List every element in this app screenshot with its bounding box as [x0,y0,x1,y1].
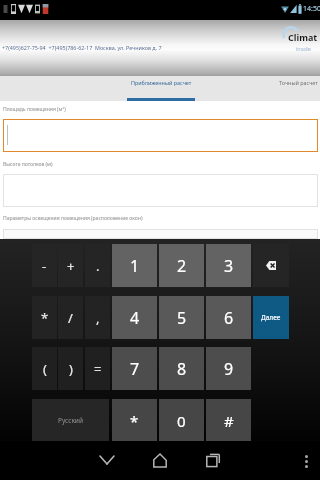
staticText: Далее [261,313,281,322]
button[interactable]: ( [32,347,57,390]
staticText: +7(495)627-75-94 +7(495)786-62-17 Москва… [2,44,162,51]
button[interactable] [3,119,318,152]
staticText: trade [296,45,311,53]
button[interactable]: # [206,399,251,442]
staticText: Точный расчет [279,79,318,86]
button[interactable]: + [58,244,83,287]
button[interactable]: 1 [112,244,157,287]
staticText: 14:50 [303,4,320,14]
staticText: 1 [130,255,140,277]
button[interactable]: 8 [159,347,204,390]
button[interactable]: , [85,296,110,339]
staticText: Приближенный расчет [131,79,192,86]
staticText: ) [69,360,73,378]
staticText: + [67,257,75,275]
staticText: . [96,257,100,275]
button[interactable]: - [32,244,57,287]
staticText: Высота потолков (м) [3,161,53,168]
button[interactable]: Русский [32,399,109,442]
button[interactable]: 4 [112,296,157,339]
staticText: 4 [130,307,140,329]
button[interactable]: Приближенный расчет [127,76,195,101]
button[interactable]: Home [146,446,174,474]
staticText: Параметры освещения помещения (расположе… [3,215,143,222]
button[interactable]: / [58,296,83,339]
staticText: * [130,411,139,431]
staticText: Площадь помещения (м²) [3,106,66,113]
staticText: 6 [224,307,234,329]
button[interactable]: Далее [253,296,289,339]
staticText: / [68,309,73,327]
button[interactable]: = [85,347,110,390]
button[interactable]: . [85,244,110,287]
button[interactable]: 7 [112,347,157,390]
staticText: Climat [288,31,318,43]
staticText: 9 [224,358,234,380]
button[interactable]: 2 [159,244,204,287]
button[interactable]: Точный расчет [279,76,320,101]
button[interactable] [3,174,318,207]
button[interactable]: 9 [206,347,251,390]
staticText: 8 [177,358,187,380]
staticText: # [224,411,234,431]
button[interactable]: * [32,296,57,339]
button[interactable]: 3 [206,244,251,287]
button[interactable]: More options [294,449,318,473]
staticText: Русский [58,416,83,425]
staticText: * [41,309,49,327]
staticText: , [96,309,100,327]
button[interactable]: 0 [159,399,204,442]
staticText: 0 [177,411,186,431]
button[interactable]: 6 [206,296,251,339]
staticText: 2 [177,255,187,277]
button[interactable]: * [112,399,157,442]
staticText: - [42,257,47,275]
staticText: = [94,360,102,378]
button[interactable]: ) [58,347,83,390]
staticText: ( [43,360,47,378]
button[interactable]: Backspace [253,244,289,287]
button[interactable] [3,229,318,239]
button[interactable]: Back [93,446,121,474]
staticText: 3 [224,255,234,277]
staticText: 5 [177,307,187,329]
button[interactable]: Recent apps [199,446,227,474]
button[interactable]: 5 [159,296,204,339]
staticText: 7 [130,358,140,380]
